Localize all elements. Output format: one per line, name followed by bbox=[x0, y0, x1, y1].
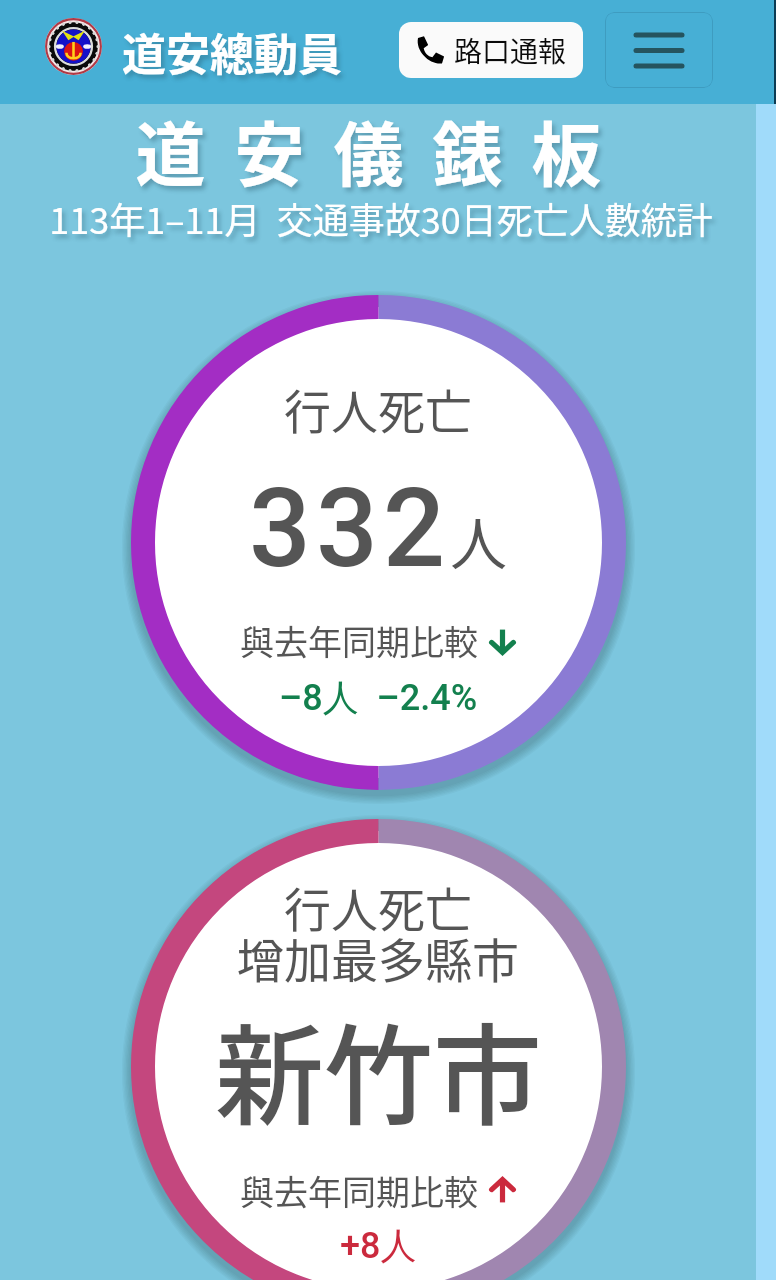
staticText: 113年1–11月 交通事故30日死亡人數統計 bbox=[0, 192, 769, 244]
staticText: 與去年同期比較 bbox=[240, 1166, 478, 1215]
staticText: 增加最多縣市 bbox=[237, 923, 519, 991]
staticText: +8人 bbox=[340, 1223, 417, 1268]
staticText: 與去年同期比較 bbox=[240, 616, 478, 665]
staticText: 行人死亡 bbox=[284, 374, 472, 442]
button[interactable] bbox=[131, 819, 626, 1280]
staticText: 道安總動員 bbox=[122, 20, 342, 84]
staticText: 332 bbox=[249, 465, 450, 593]
staticText: –8人 –2.4% bbox=[279, 675, 478, 720]
button[interactable]: Open navigation menu bbox=[605, 12, 713, 88]
staticText: 路口通報 bbox=[454, 30, 567, 71]
staticText: 行人死亡 bbox=[284, 872, 472, 940]
button[interactable]: 路口通報 bbox=[399, 22, 583, 78]
staticText: 道安儀錶板 bbox=[0, 100, 771, 201]
staticText: 人 bbox=[450, 499, 507, 582]
staticText: 新竹市 bbox=[215, 990, 542, 1148]
button[interactable] bbox=[131, 295, 626, 790]
